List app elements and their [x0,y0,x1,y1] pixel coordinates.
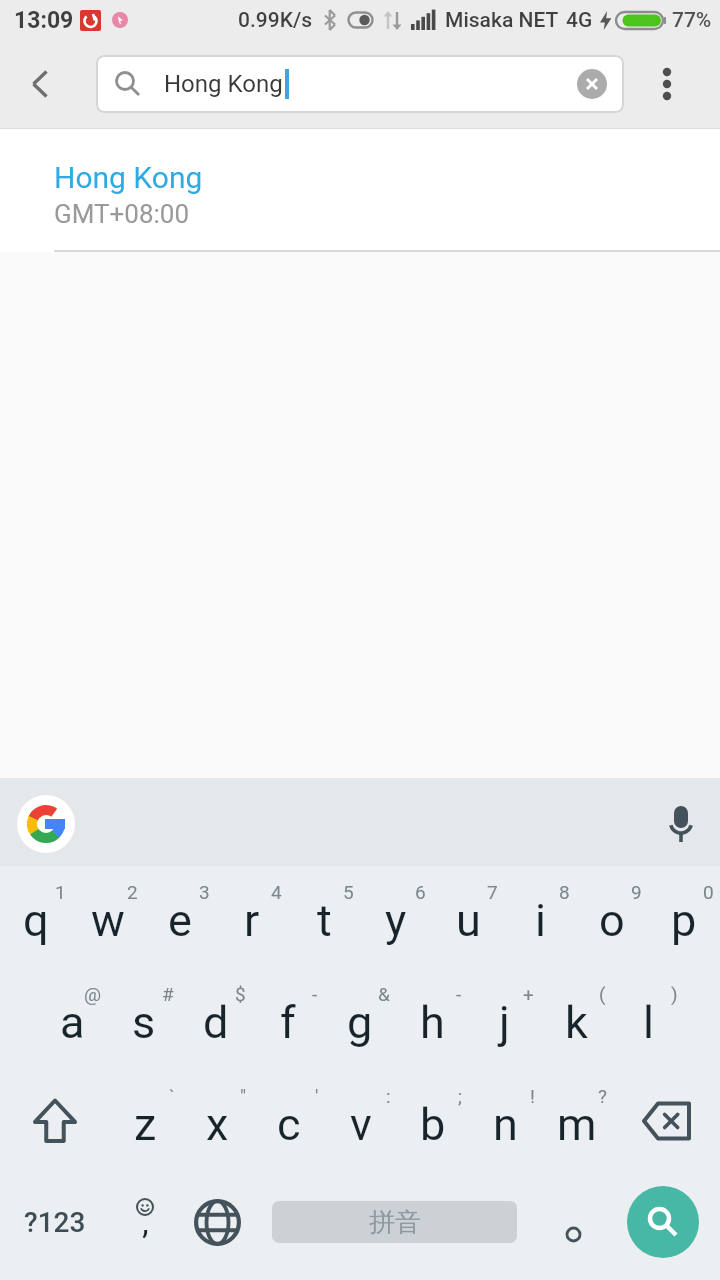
staticText: 9 [631,881,642,903]
staticText: ` [169,1085,175,1107]
button[interactable]: j [468,968,540,1070]
staticText: 0 [703,881,714,903]
staticText: 0.99K/s [238,8,313,33]
button[interactable] [17,795,75,853]
staticText: h [420,996,445,1049]
staticText: Hong Kong [164,70,283,98]
staticText: ?123 [24,1206,86,1239]
staticText: 7 [487,881,498,903]
staticText: e [168,894,192,947]
button[interactable]: b [397,1070,469,1172]
staticText: ; [458,1085,463,1107]
staticText: 2 [127,881,138,903]
button[interactable]: ?123 [0,1172,109,1280]
button[interactable]: l [612,968,684,1070]
staticText: ? [598,1085,607,1107]
staticText: z [134,1098,157,1151]
button[interactable] [181,1172,253,1280]
staticText: 13:09 [14,7,74,34]
staticText: GMT+08:00 [54,199,190,229]
staticText: 1 [55,881,66,903]
staticText: 4G [566,8,593,33]
button[interactable]: o [576,866,648,968]
staticText: : [386,1085,391,1107]
button[interactable]: u [432,866,504,968]
staticText: 8 [559,881,570,903]
button[interactable]: z [109,1070,181,1172]
button[interactable]: k [540,968,612,1070]
button[interactable]: v [325,1070,397,1172]
staticText: @ [84,983,102,1005]
staticText: x [206,1098,229,1151]
staticText: 4 [271,881,282,903]
button[interactable]: g [324,968,396,1070]
staticText: k [565,996,588,1049]
button[interactable] [624,40,720,128]
staticText: c [277,1098,301,1151]
staticText: u [456,894,481,947]
button[interactable]: Hong Kong [0,129,720,252]
staticText: t [317,894,332,947]
button[interactable] [0,40,80,128]
staticText: v [350,1098,372,1151]
staticText: r [244,894,260,947]
staticText: i [535,894,546,947]
staticText: " [240,1085,247,1107]
button[interactable]: p [648,866,720,968]
button[interactable] [0,1070,109,1172]
button[interactable]: c [253,1070,325,1172]
staticText: w [91,894,125,947]
button[interactable]: Hong Kong [96,55,624,113]
button[interactable]: d [180,968,252,1070]
button[interactable]: r [216,866,288,968]
button[interactable] [609,1172,720,1280]
button[interactable]: q [0,866,72,968]
button[interactable]: 拼音 [253,1172,537,1280]
staticText: & [378,983,390,1005]
staticText: 5 [343,881,354,903]
button[interactable]: y [360,866,432,968]
staticText: j [499,996,510,1049]
button[interactable]: , [109,1172,181,1280]
staticText: a [60,996,85,1049]
button[interactable] [650,778,712,866]
button[interactable]: f [252,968,324,1070]
staticText: l [643,996,654,1049]
staticText: - [456,983,462,1005]
staticText: p [671,894,697,947]
staticText: f [280,996,296,1049]
staticText: s [132,996,156,1049]
staticText: 77% [672,8,712,33]
button[interactable] [537,1172,609,1280]
staticText: Hong Kong [54,160,203,195]
button[interactable]: m [541,1070,613,1172]
button[interactable]: e [144,866,216,968]
button[interactable]: h [396,968,468,1070]
button[interactable]: t [288,866,360,968]
staticText: d [203,996,229,1049]
button[interactable]: s [108,968,180,1070]
staticText: Misaka NET [445,8,559,33]
staticText: - [312,983,318,1005]
button[interactable]: w [72,866,144,968]
staticText: 3 [199,881,210,903]
staticText: + [523,983,534,1005]
staticText: ) [671,983,678,1005]
staticText: b [420,1098,446,1151]
staticText: $ [235,983,246,1005]
staticText: y [385,894,407,947]
button[interactable]: x [181,1070,253,1172]
staticText: m [557,1098,597,1151]
staticText: o [599,894,625,947]
staticText: ' [315,1085,319,1107]
button[interactable]: a [36,968,108,1070]
staticText: ( [599,983,606,1005]
staticText: 拼音 [369,1206,421,1239]
staticText: q [23,894,49,947]
staticText: # [162,983,174,1005]
button[interactable] [577,69,607,99]
button[interactable] [613,1070,720,1172]
button[interactable]: n [469,1070,541,1172]
button[interactable]: i [504,866,576,968]
staticText: n [493,1098,518,1151]
